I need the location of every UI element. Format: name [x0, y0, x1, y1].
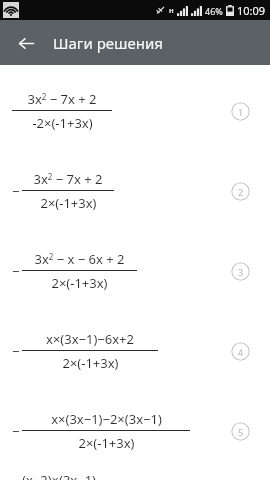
- button[interactable]: 5: [231, 422, 250, 441]
- staticText: −: [12, 422, 20, 440]
- button[interactable]: 4: [231, 342, 250, 361]
- staticText: −: [12, 262, 20, 280]
- staticText: 46%: [205, 5, 223, 17]
- staticText: Шаги решения: [53, 33, 163, 53]
- button[interactable]: 3x2 − 7x + 2: [0, 71, 270, 151]
- staticText: 2×(-1+3x): [62, 354, 119, 372]
- button[interactable]: −: [0, 231, 270, 311]
- staticText: x×(3x−1)−6x+2: [46, 330, 134, 348]
- button[interactable]: 1: [231, 102, 250, 121]
- staticText: -2×(-1+3x): [32, 114, 93, 132]
- staticText: 3x2 − 7x + 2: [27, 90, 97, 108]
- staticText: 10:09: [237, 3, 266, 18]
- staticText: 1: [238, 106, 244, 118]
- staticText: x×(3x−1)−2×(3x−1): [51, 410, 162, 428]
- button[interactable]: −: [0, 391, 270, 471]
- staticText: −: [12, 182, 20, 200]
- staticText: 2: [238, 186, 244, 198]
- button[interactable]: −: [0, 151, 270, 231]
- staticText: 3: [238, 266, 244, 278]
- button[interactable]: −: [0, 471, 270, 480]
- button[interactable]: 2: [231, 182, 250, 201]
- button[interactable]: −: [0, 311, 270, 391]
- staticText: (x−2)×(3x−1): [22, 471, 96, 480]
- button[interactable]: Back: [12, 29, 40, 57]
- staticText: 4: [238, 346, 244, 358]
- button[interactable]: 3: [231, 262, 250, 281]
- staticText: 3x2 − x − 6x + 2: [34, 250, 125, 268]
- staticText: 5: [238, 426, 244, 438]
- staticText: 2×(-1+3x): [40, 194, 97, 212]
- staticText: 3x2 − 7x + 2: [33, 170, 103, 188]
- staticText: H: [169, 7, 174, 15]
- staticText: −: [12, 342, 20, 360]
- staticText: 2×(-1+3x): [78, 434, 135, 452]
- staticText: 2×(-1+3x): [51, 274, 108, 292]
